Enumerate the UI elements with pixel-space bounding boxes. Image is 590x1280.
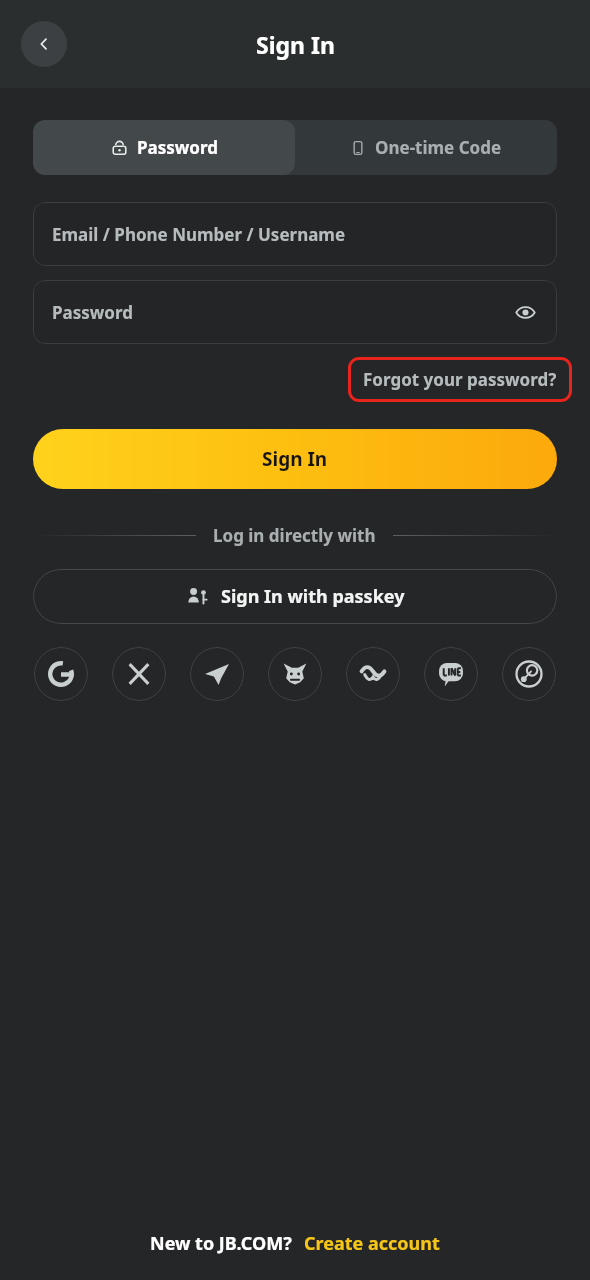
staticText: Password bbox=[137, 136, 218, 159]
staticText: New to JB.COM? bbox=[150, 1231, 292, 1256]
button[interactable]: Sign In bbox=[33, 429, 557, 489]
button[interactable]: LINE bbox=[424, 647, 478, 701]
staticText: Forgot your password? bbox=[363, 368, 557, 391]
button[interactable]: One-time Code bbox=[295, 120, 557, 175]
button[interactable]: X bbox=[112, 647, 166, 701]
button[interactable]: Sign In with passkey bbox=[33, 569, 557, 624]
button[interactable]: MetaMask bbox=[268, 647, 322, 701]
staticText: Create account bbox=[304, 1231, 440, 1256]
button[interactable]: Forgot your password? bbox=[348, 357, 572, 402]
staticText: Password bbox=[52, 301, 133, 324]
button[interactable]: WalletConnect bbox=[346, 647, 400, 701]
staticText: Sign In bbox=[262, 446, 328, 472]
staticText: One-time Code bbox=[375, 136, 502, 159]
button[interactable]: Back bbox=[21, 21, 67, 67]
staticText: Sign In with passkey bbox=[221, 584, 405, 609]
staticText: Sign In bbox=[256, 29, 335, 60]
button[interactable]: Show password bbox=[507, 294, 543, 330]
button[interactable]: Password bbox=[33, 280, 557, 344]
button[interactable]: Steam bbox=[502, 647, 556, 701]
staticText: Log in directly with bbox=[213, 524, 376, 547]
button[interactable]: New to JB.COM? bbox=[0, 1231, 590, 1256]
staticText: Email / Phone Number / Username bbox=[52, 223, 346, 246]
button[interactable]: Email / Phone Number / Username bbox=[33, 202, 557, 266]
button[interactable]: Telegram bbox=[190, 647, 244, 701]
button[interactable]: Google bbox=[34, 647, 88, 701]
button[interactable]: Password bbox=[33, 120, 295, 175]
